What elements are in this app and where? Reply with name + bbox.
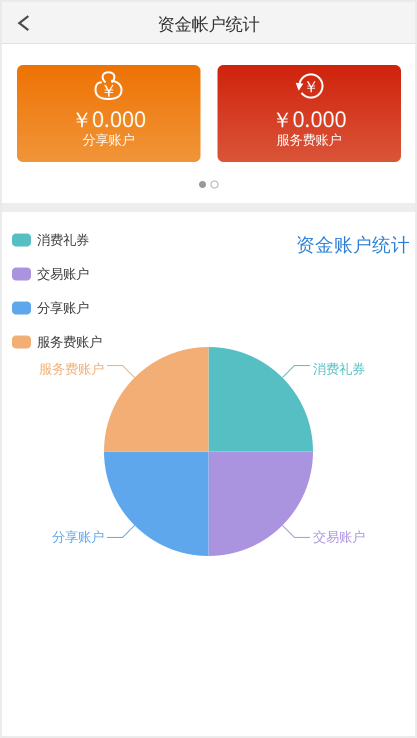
staticText: 消费礼券 [313,361,365,377]
staticText: 服务费账户 [39,361,104,377]
button[interactable]: Back [2,1,46,45]
staticText: 服务费账户 [276,132,341,148]
staticText: 资金账户统计 [296,233,410,256]
staticText: ￥0.000 [71,105,146,133]
staticText: 分享账户 [82,132,134,148]
staticText: 服务费账户 [37,334,102,350]
staticText: ￥ [303,77,319,97]
staticText: 资金帐户统计 [157,14,259,35]
button[interactable]: ￥ [217,65,401,162]
staticText: 交易账户 [313,529,365,545]
staticText: 分享账户 [37,300,89,316]
staticText: ￥0.000 [271,105,346,133]
staticText: 分享账户 [52,529,104,545]
staticText: ￥ [100,80,117,102]
staticText: 消费礼券 [37,232,89,248]
button[interactable]: ￥ [17,65,200,162]
staticText: 交易账户 [37,266,89,282]
